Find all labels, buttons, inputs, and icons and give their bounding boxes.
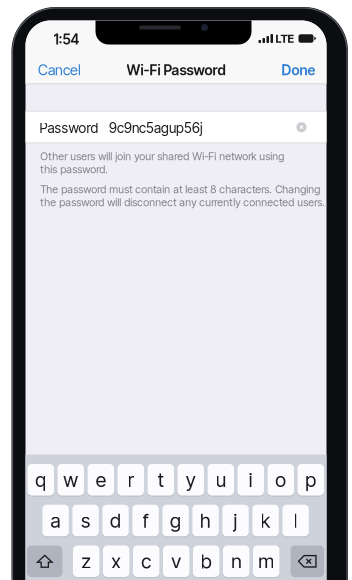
staticText: p — [305, 468, 316, 492]
staticText: Cancel — [38, 61, 81, 79]
button[interactable]: c — [133, 545, 159, 577]
button[interactable]: l — [282, 505, 309, 536]
button[interactable]: a — [42, 505, 69, 536]
button[interactable]: o — [267, 464, 294, 496]
button[interactable]: z — [73, 545, 99, 577]
staticText: g — [170, 509, 181, 532]
staticText: w — [63, 468, 78, 492]
staticText: r — [128, 468, 134, 492]
button[interactable]: x — [103, 545, 129, 577]
staticText: o — [275, 468, 286, 492]
staticText: s — [81, 509, 90, 532]
button[interactable]: j — [222, 505, 249, 536]
button[interactable]: Done — [273, 56, 326, 84]
staticText: e — [96, 468, 106, 492]
staticText: t — [158, 468, 164, 492]
button[interactable]: t — [147, 464, 174, 496]
staticText: c — [141, 549, 151, 573]
button[interactable]: s — [72, 505, 99, 536]
staticText: n — [231, 549, 241, 573]
staticText: v — [171, 549, 181, 573]
button[interactable]: q — [27, 464, 54, 496]
button[interactable]: p — [297, 464, 324, 496]
button[interactable]: Shift — [27, 545, 62, 577]
button[interactable]: Password — [25, 111, 326, 143]
staticText: 9c9nc5agup56j — [109, 120, 203, 136]
staticText: f — [143, 509, 149, 532]
button[interactable]: n — [223, 545, 249, 577]
staticText: LTE — [275, 32, 294, 45]
staticText: k — [261, 509, 271, 532]
staticText: j — [234, 509, 238, 532]
button[interactable]: i — [237, 464, 264, 496]
button[interactable]: k — [252, 505, 279, 536]
staticText: d — [110, 509, 121, 532]
staticText: b — [201, 549, 212, 573]
button[interactable]: d — [102, 505, 129, 536]
staticText: x — [111, 549, 121, 573]
staticText: The password must contain at least 8 cha… — [40, 183, 325, 209]
button[interactable]: h — [192, 505, 219, 536]
staticText: m — [258, 549, 274, 573]
staticText: Other users will join your shared Wi-Fi … — [40, 150, 284, 176]
staticText: h — [200, 509, 211, 532]
button[interactable]: g — [162, 505, 189, 536]
staticText: z — [81, 549, 91, 573]
staticText: Done — [281, 61, 315, 78]
button[interactable]: v — [163, 545, 189, 577]
button[interactable]: y — [177, 464, 204, 496]
button[interactable]: w — [57, 464, 84, 496]
button[interactable]: r — [117, 464, 144, 496]
button[interactable]: Cancel — [25, 56, 88, 84]
button[interactable]: f — [132, 505, 159, 536]
staticText: q — [35, 468, 46, 492]
staticText: y — [186, 468, 196, 492]
staticText: Password — [39, 120, 98, 136]
staticText: 1:54 — [53, 31, 79, 48]
staticText: a — [50, 509, 60, 532]
button[interactable]: Delete — [290, 545, 324, 577]
button[interactable]: e — [87, 464, 114, 496]
staticText: Wi-Fi Password — [126, 61, 225, 78]
button[interactable]: m — [253, 545, 279, 577]
button[interactable]: b — [193, 545, 219, 577]
staticText: l — [294, 509, 298, 532]
staticText: u — [216, 468, 226, 492]
button[interactable]: u — [207, 464, 234, 496]
staticText: i — [249, 468, 253, 492]
